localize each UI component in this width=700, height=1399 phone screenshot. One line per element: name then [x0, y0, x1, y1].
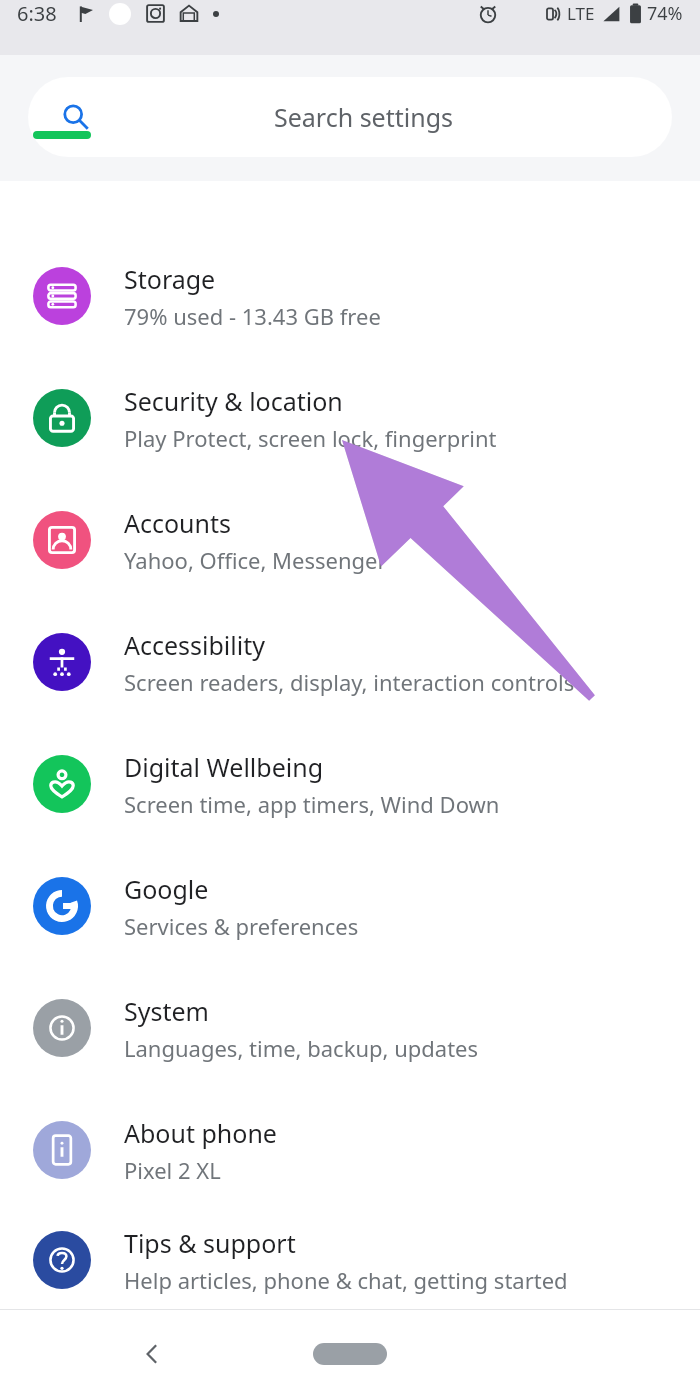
staticText: Screen readers, display, interaction con… [124, 667, 575, 697]
staticText: 74% [647, 1, 683, 26]
staticText: Pixel 2 XL [124, 1155, 221, 1185]
staticText: Services & preferences [124, 911, 359, 941]
button[interactable]: Search settings [28, 77, 672, 157]
staticText: Storage [124, 262, 216, 296]
staticText: Yahoo, Office, Messenger [124, 545, 387, 575]
staticText: About phone [124, 1116, 277, 1150]
staticText: Play Protect, screen lock, fingerprint [124, 423, 497, 453]
button[interactable]: System [0, 967, 700, 1089]
staticText: Google [124, 872, 209, 906]
staticText: Search settings [274, 100, 454, 134]
staticText: System [124, 994, 209, 1028]
button[interactable]: Accounts [0, 479, 700, 601]
staticText: 6:38 [17, 0, 57, 27]
staticText: Accessibility [124, 628, 265, 662]
button[interactable]: Digital Wellbeing [0, 723, 700, 845]
staticText: Screen time, app timers, Wind Down [124, 789, 500, 819]
staticText: 79% used - 13.43 GB free [124, 301, 381, 331]
button[interactable]: Tips & support [0, 1211, 700, 1309]
button[interactable]: Home [313, 1343, 387, 1365]
staticText: Tips & support [124, 1226, 296, 1260]
button[interactable]: Google [0, 845, 700, 967]
button[interactable]: About phone [0, 1089, 700, 1211]
staticText: Accounts [124, 506, 232, 540]
staticText: LTE [567, 2, 595, 25]
button[interactable]: Back [118, 1320, 186, 1388]
button[interactable]: Security & location [0, 357, 700, 479]
staticText: Digital Wellbeing [124, 750, 324, 784]
button[interactable]: Accessibility [0, 601, 700, 723]
staticText: Help articles, phone & chat, getting sta… [124, 1265, 568, 1295]
staticText: Languages, time, backup, updates [124, 1033, 479, 1063]
button[interactable]: Storage [0, 189, 700, 357]
staticText: Security & location [124, 384, 343, 418]
